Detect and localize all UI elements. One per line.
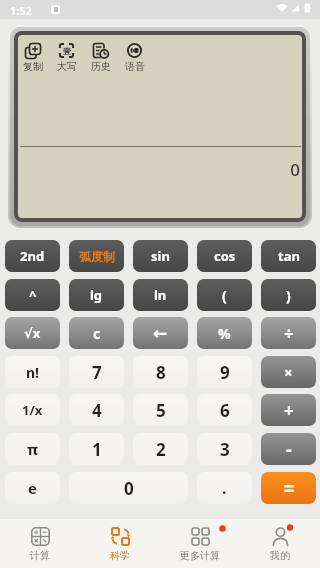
button[interactable]: c <box>69 317 124 349</box>
button[interactable]: . <box>197 472 252 504</box>
staticText: 9 <box>220 361 230 384</box>
button[interactable]: sin <box>133 240 188 272</box>
staticText: c <box>93 324 101 343</box>
staticText: 历史 <box>91 60 111 73</box>
staticText: ^ <box>29 286 37 304</box>
button[interactable]: ln <box>133 279 188 311</box>
staticText: sin <box>151 247 170 265</box>
button[interactable] <box>261 472 316 504</box>
staticText: 我的 <box>270 549 290 562</box>
staticText: 0 <box>18 158 300 181</box>
button[interactable]: ← <box>133 317 188 349</box>
staticText: ( <box>222 286 227 305</box>
button[interactable]: 3 <box>197 433 252 465</box>
button[interactable]: 5 <box>133 394 188 426</box>
button[interactable]: 8 <box>133 356 188 388</box>
staticText: ← <box>153 323 168 343</box>
button[interactable]: 2nd <box>5 240 60 272</box>
button[interactable]: 1 <box>69 433 124 465</box>
staticText: 2nd <box>20 247 45 265</box>
staticText: lg <box>90 286 103 304</box>
staticText: 8 <box>156 361 166 384</box>
button[interactable]: 更多计算 <box>160 519 240 568</box>
staticText: 0 <box>124 477 134 500</box>
staticText: 计算 <box>30 549 50 562</box>
staticText: π <box>27 439 39 459</box>
button[interactable]: 复制 <box>18 43 49 73</box>
staticText: e <box>28 478 37 498</box>
staticText: 壹 <box>63 46 71 56</box>
button[interactable]: - <box>261 433 316 465</box>
staticText: ln <box>154 286 167 304</box>
staticText: 大写 <box>57 60 77 73</box>
button[interactable]: 4 <box>69 394 124 426</box>
button[interactable]: % <box>197 317 252 349</box>
staticText: 3 <box>220 438 230 461</box>
staticText: 4 <box>92 399 102 422</box>
button[interactable]: 历史 <box>85 43 117 73</box>
staticText: 5 <box>156 399 166 422</box>
button[interactable]: n! <box>5 356 60 388</box>
button[interactable]: + <box>261 394 316 426</box>
button[interactable]: e <box>5 472 60 504</box>
staticText: tan <box>278 247 300 265</box>
staticText: 更多计算 <box>180 549 220 562</box>
button[interactable]: 语音 <box>119 43 151 73</box>
button[interactable]: × <box>261 356 316 388</box>
button[interactable]: 壹 <box>51 43 83 73</box>
staticText: 2 <box>156 438 166 461</box>
button[interactable]: 1/x <box>5 394 60 426</box>
button[interactable]: ( <box>197 279 252 311</box>
button[interactable]: 9 <box>197 356 252 388</box>
staticText: 复制 <box>23 60 43 73</box>
button[interactable]: cos <box>197 240 252 272</box>
button[interactable]: √x <box>5 317 60 349</box>
button[interactable]: ) <box>261 279 316 311</box>
staticText: 1 <box>92 438 102 461</box>
button[interactable]: 6 <box>197 394 252 426</box>
staticText: n! <box>26 363 40 382</box>
button[interactable]: ÷ <box>261 317 316 349</box>
staticText: - <box>286 437 292 462</box>
button[interactable]: 计算 <box>0 519 80 568</box>
button[interactable]: tan <box>261 240 316 272</box>
staticText: + <box>284 399 294 422</box>
staticText: × <box>284 362 293 382</box>
button[interactable]: 0 <box>69 472 188 504</box>
staticText: 科学 <box>110 549 130 562</box>
staticText: 弧度制 <box>79 249 115 264</box>
staticText: 语音 <box>125 60 145 73</box>
staticText: % <box>218 324 231 343</box>
staticText: √x <box>24 324 41 342</box>
button[interactable]: 我的 <box>240 519 320 568</box>
button[interactable]: lg <box>69 279 124 311</box>
staticText: 1/x <box>22 401 43 419</box>
staticText: 6 <box>220 399 230 422</box>
staticText: ) <box>286 286 291 305</box>
staticText: ÷ <box>284 322 294 345</box>
button[interactable]: 科学 <box>80 519 160 568</box>
button[interactable]: ^ <box>5 279 60 311</box>
button[interactable]: 2 <box>133 433 188 465</box>
button[interactable]: 弧度制 <box>69 240 124 272</box>
staticText: 7 <box>92 361 102 384</box>
button[interactable]: 7 <box>69 356 124 388</box>
staticText: cos <box>214 247 236 265</box>
button[interactable]: π <box>5 433 60 465</box>
staticText: . <box>222 477 227 499</box>
staticText: 1:52 <box>10 3 32 18</box>
